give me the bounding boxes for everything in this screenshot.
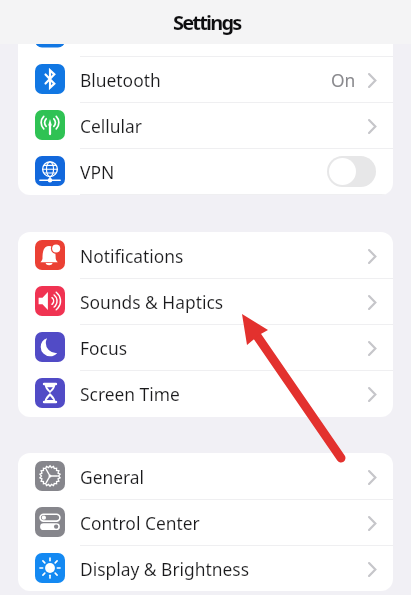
staticText: Notifications: [80, 244, 184, 268]
button[interactable]: Bluetooth: [18, 56, 393, 102]
button[interactable]: VPN: [18, 148, 393, 194]
button[interactable]: VPN toggle: [327, 156, 376, 187]
staticText: Control Center: [80, 511, 200, 535]
staticText: Sounds & Haptics: [80, 290, 224, 314]
button[interactable]: Sounds & Haptics: [18, 278, 393, 324]
button[interactable]: General: [18, 453, 393, 499]
staticText: General: [80, 465, 145, 489]
button[interactable]: Focus: [18, 324, 393, 370]
button[interactable]: Display & Brightness: [18, 545, 393, 591]
staticText: Display & Brightness: [80, 557, 250, 581]
staticText: Bluetooth: [80, 68, 161, 92]
button[interactable]: Cellular: [18, 102, 393, 148]
staticText: Screen Time: [80, 382, 180, 406]
staticText: Focus: [80, 336, 127, 360]
staticText: VPN: [80, 160, 115, 184]
staticText: Cellular: [80, 114, 142, 138]
staticText: Settings: [173, 9, 241, 36]
button[interactable]: Screen Time: [18, 370, 393, 416]
button[interactable]: Control Center: [18, 499, 393, 545]
staticText: On: [331, 68, 356, 92]
button[interactable]: Notifications: [18, 232, 393, 278]
